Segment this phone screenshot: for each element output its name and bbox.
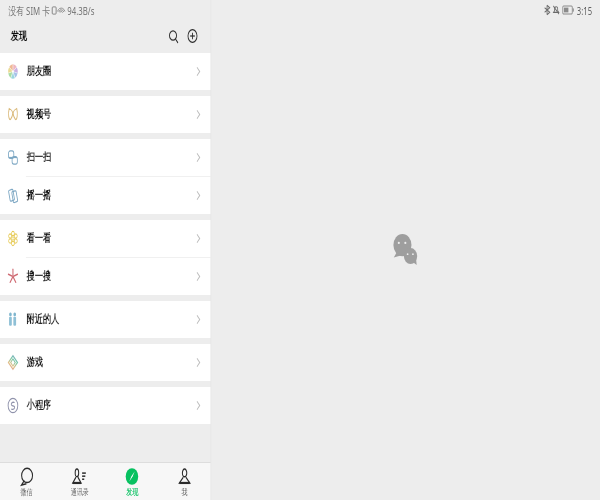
staticText: 发现 [10, 29, 27, 44]
button[interactable]: 通讯录 [53, 463, 106, 500]
button[interactable]: 摇一摇 [0, 177, 211, 214]
button[interactable]: 视频号 [0, 96, 211, 133]
button[interactable]: 小程序 [0, 387, 211, 424]
button[interactable]: Search [165, 27, 182, 45]
staticText: 搜一搜 [27, 269, 51, 284]
button[interactable]: 发现 [106, 463, 158, 500]
staticText: 微信 [20, 487, 33, 498]
staticText: 朋友圈 [27, 64, 51, 79]
staticText: 3:15 [577, 3, 592, 18]
button[interactable]: 我 [158, 463, 211, 500]
staticText: 我 [181, 487, 188, 498]
staticText: 发现 [126, 487, 139, 498]
button[interactable]: 朋友圈 [0, 53, 211, 90]
button[interactable]: 看一看 [0, 220, 211, 257]
staticText: 小程序 [27, 398, 51, 413]
button[interactable]: 游戏 [0, 344, 211, 381]
button[interactable]: 扫一扫 [0, 139, 211, 176]
staticText: 通讯录 [71, 487, 89, 498]
button[interactable]: 搜一搜 [0, 258, 211, 295]
staticText: 游戏 [27, 355, 43, 370]
staticText: 附近的人 [27, 312, 59, 327]
staticText: 没有 SIM 卡 [8, 3, 50, 18]
staticText: 扫一扫 [27, 150, 51, 165]
staticText: 看一看 [27, 231, 51, 246]
staticText: 摇一摇 [27, 188, 51, 203]
staticText: 94.3B/s [67, 3, 94, 18]
button[interactable]: Add [184, 27, 201, 45]
staticText: 视频号 [27, 107, 51, 122]
button[interactable]: 微信 [0, 463, 53, 500]
button[interactable]: 附近的人 [0, 301, 211, 338]
